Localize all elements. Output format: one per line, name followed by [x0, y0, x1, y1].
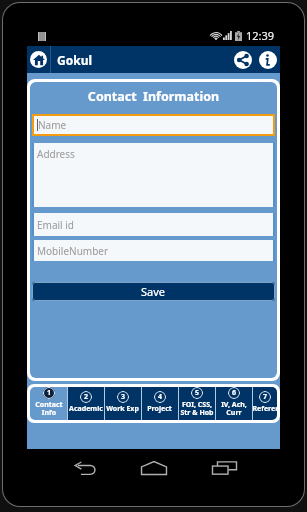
button[interactable]: MobileNumber: [34, 240, 273, 261]
staticText: 1: [47, 388, 52, 398]
button[interactable]: Save: [32, 282, 275, 301]
button[interactable]: 4: [141, 387, 178, 420]
button[interactable]: 5: [178, 387, 215, 420]
button[interactable]: Recent apps: [202, 452, 246, 484]
staticText: 5: [195, 388, 200, 398]
staticText: Contact Info: [35, 400, 63, 417]
staticText: 2: [84, 392, 89, 402]
staticText: 4: [158, 392, 163, 402]
staticText: Work Exp: [106, 404, 139, 414]
staticText: 6: [232, 388, 237, 398]
staticText: 12:39: [246, 28, 275, 43]
button[interactable]: 6: [215, 387, 252, 420]
staticText: Address: [37, 147, 75, 161]
staticText: Name: [38, 118, 67, 132]
staticText: FOI, CSS, Str & Hob: [180, 400, 214, 417]
button[interactable]: Name: [34, 116, 273, 134]
staticText: 3: [121, 392, 126, 402]
staticText: Reference: [252, 404, 277, 414]
button[interactable]: 7: [252, 387, 277, 420]
button[interactable]: Share: [234, 51, 252, 69]
button[interactable]: 1: [30, 387, 67, 420]
button[interactable]: Info: [259, 51, 277, 69]
staticText: MobileNumber: [37, 244, 109, 258]
staticText: Save: [141, 284, 166, 299]
staticText: IV, Ach, Curr: [221, 400, 247, 417]
button[interactable]: Home: [132, 452, 176, 484]
button[interactable]: 3: [104, 387, 141, 420]
staticText: Email id: [37, 218, 75, 232]
staticText: 7: [263, 392, 268, 402]
button[interactable]: 2: [67, 387, 104, 420]
staticText: Academic: [69, 404, 103, 414]
staticText: Gokul: [57, 52, 93, 68]
button[interactable]: Address: [34, 143, 273, 207]
staticText: Contact Information: [30, 88, 277, 105]
button[interactable]: Home: [30, 51, 47, 68]
button[interactable]: Email id: [34, 213, 273, 236]
staticText: Project: [147, 404, 172, 414]
button[interactable]: Back: [62, 452, 106, 484]
